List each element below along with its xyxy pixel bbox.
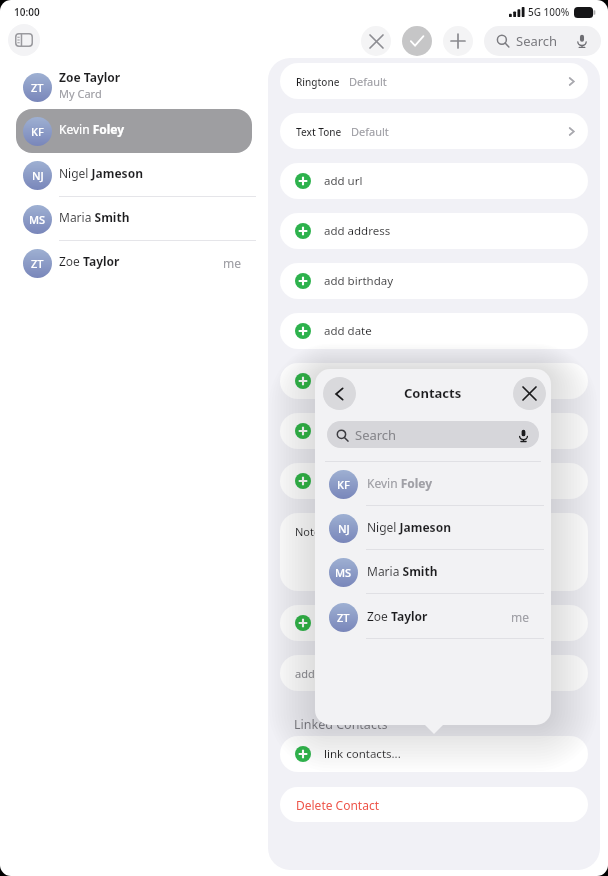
button[interactable]: Ringtone	[280, 63, 588, 99]
staticText: link contacts...	[324, 746, 401, 762]
button[interactable]: Add	[443, 26, 473, 56]
staticText: Maria Smith	[367, 563, 438, 579]
button[interactable]: add birthday	[280, 263, 588, 299]
staticText: me	[223, 255, 241, 271]
button[interactable]: ZT	[315, 595, 551, 639]
staticText: ZT	[31, 80, 44, 95]
staticText: add field	[295, 666, 340, 681]
button[interactable]: NJ	[315, 506, 551, 550]
button[interactable]: KF	[315, 462, 551, 506]
staticText: NJ	[338, 521, 350, 536]
button[interactable]: Notes	[280, 513, 588, 591]
staticText: Notes	[295, 524, 326, 539]
button[interactable]: add	[280, 413, 588, 449]
staticText: Zoe Taylor	[59, 253, 120, 269]
staticText: add social profile	[324, 615, 416, 631]
staticText: me	[511, 609, 529, 625]
staticText: Linked Contacts	[294, 716, 388, 733]
button[interactable]: Done	[402, 26, 432, 56]
staticText: Kevin Foley	[59, 121, 125, 137]
button[interactable]: add	[280, 363, 588, 399]
staticText: add	[324, 473, 345, 489]
staticText: MS	[335, 565, 352, 580]
button[interactable]: Text Tone	[280, 113, 588, 149]
button[interactable]: Back	[323, 377, 356, 410]
staticText: My Card	[59, 86, 102, 101]
staticText: MS	[29, 212, 46, 227]
button[interactable]: Close	[513, 377, 546, 410]
staticText: KF	[337, 477, 350, 492]
button[interactable]: Delete Contact	[280, 787, 588, 822]
staticText: Ringtone	[296, 75, 340, 89]
staticText: add	[324, 423, 345, 439]
staticText: 10:00	[14, 5, 40, 19]
staticText: Nigel Jameson	[367, 519, 451, 535]
staticText: Kevin Foley	[367, 475, 433, 491]
staticText: add	[324, 373, 345, 389]
button[interactable]: Search	[327, 421, 539, 448]
staticText: KF	[31, 124, 44, 139]
staticText: add url	[324, 173, 363, 189]
staticText: add birthday	[324, 273, 394, 289]
staticText: Search	[516, 32, 558, 50]
staticText: Search	[355, 426, 397, 444]
button[interactable]: add date	[280, 313, 588, 349]
button[interactable]: add	[280, 463, 588, 499]
staticText: Nigel Jameson	[59, 165, 143, 181]
button[interactable]: NJ	[16, 153, 252, 197]
button[interactable]: add url	[280, 163, 588, 199]
button[interactable]: add field	[280, 655, 588, 691]
staticText: Contacts	[404, 384, 462, 402]
staticText: 5G 100%	[528, 5, 570, 19]
staticText: add date	[324, 323, 372, 339]
button[interactable]: Cancel	[361, 26, 391, 56]
staticText: Text Tone	[296, 125, 342, 139]
button[interactable]: add social profile	[280, 605, 588, 641]
staticText: Zoe Taylor	[367, 608, 428, 624]
button[interactable]: ZT	[16, 241, 252, 285]
staticText: NJ	[32, 168, 44, 183]
staticText: Maria Smith	[59, 209, 130, 225]
button[interactable]: Search	[484, 26, 601, 56]
button[interactable]: ZT	[16, 65, 252, 109]
staticText: Default	[351, 124, 389, 139]
staticText: ZT	[31, 256, 44, 271]
button[interactable]: link contacts...	[280, 736, 588, 772]
staticText: Delete Contact	[296, 797, 380, 813]
staticText: Default	[349, 74, 387, 89]
staticText: add address	[324, 223, 391, 239]
staticText: Zoe Taylor	[59, 69, 121, 85]
button[interactable]: KF	[16, 109, 252, 153]
staticText: ZT	[337, 610, 350, 625]
button[interactable]: MS	[315, 550, 551, 594]
button[interactable]: MS	[16, 197, 252, 241]
button[interactable]: add address	[280, 213, 588, 249]
button[interactable]: Toggle sidebar	[8, 24, 40, 56]
